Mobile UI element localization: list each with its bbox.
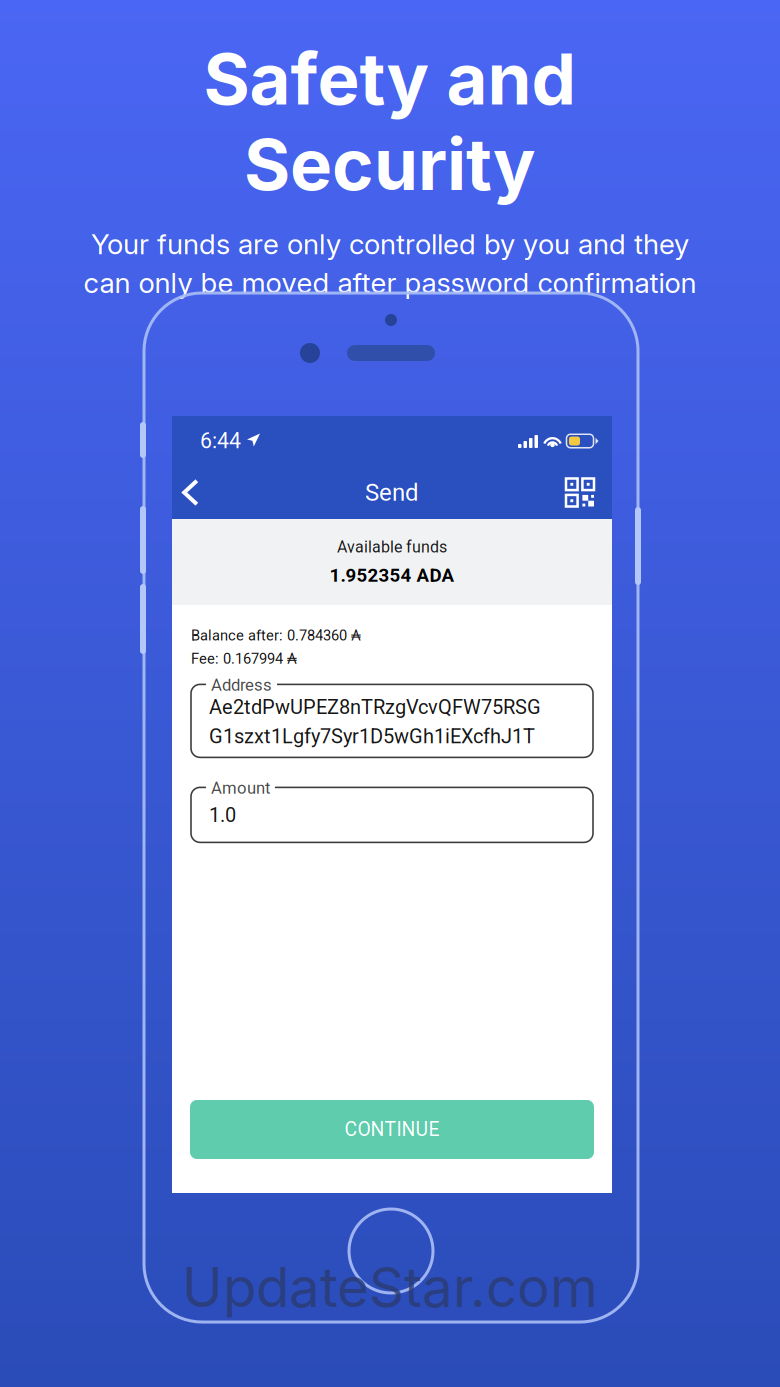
staticText: G1szxt1Lgfy7Syr1D5wGh1iEXcfhJ1T — [209, 725, 535, 748]
staticText: Balance after: 0.784360 ₳ — [191, 627, 361, 644]
staticText: Ae2tdPwUPEZ8nTRzgVcvQFW75RSG — [209, 695, 541, 719]
staticText: Send — [365, 478, 419, 506]
staticText: 6:44 — [200, 428, 241, 453]
staticText: Fee: 0.167994 ₳ — [191, 650, 297, 667]
staticText: can only be moved after password confirm… — [83, 266, 696, 300]
button[interactable]: CONTINUE — [190, 1100, 594, 1159]
staticText: 1.0 — [209, 803, 236, 827]
staticText: Your funds are only controlled by you an… — [91, 227, 689, 261]
button[interactable]: Scan QR code — [553, 467, 612, 517]
staticText: Safety and — [203, 36, 576, 121]
button[interactable]: Back — [172, 468, 211, 516]
staticText: CONTINUE — [344, 1118, 439, 1141]
staticText: UpdateStar.com — [182, 1254, 598, 1320]
staticText: Security — [244, 121, 536, 207]
staticText: Address — [211, 675, 272, 695]
staticText: Amount — [211, 778, 270, 798]
staticText: 1.952354 ADA — [329, 564, 454, 586]
staticText: Available funds — [337, 538, 447, 556]
